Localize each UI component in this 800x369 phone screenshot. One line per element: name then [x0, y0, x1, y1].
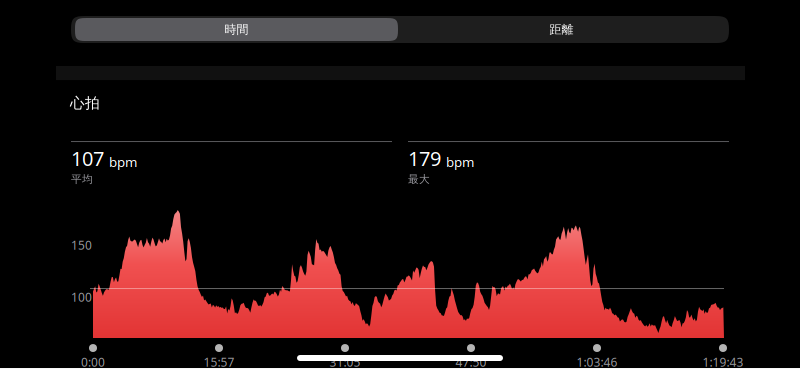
- staticText: bpm: [446, 153, 474, 171]
- staticText: 1:03:46: [576, 354, 617, 369]
- staticText: 距離: [549, 22, 573, 37]
- staticText: 心拍: [70, 94, 100, 112]
- staticText: 0:00: [81, 354, 105, 369]
- button[interactable]: 時間: [71, 16, 729, 43]
- staticText: 1:19:43: [702, 354, 743, 369]
- staticText: 179: [408, 145, 441, 172]
- staticText: 15:57: [203, 354, 234, 369]
- staticText: 47:50: [455, 354, 486, 369]
- staticText: 最大: [408, 173, 430, 186]
- staticText: 150: [71, 237, 92, 253]
- staticText: 31:05: [329, 354, 360, 369]
- staticText: 100: [71, 289, 92, 305]
- staticText: bpm: [109, 153, 137, 171]
- staticText: 107: [71, 145, 104, 172]
- staticText: 時間: [224, 22, 248, 37]
- staticText: 平均: [71, 173, 93, 186]
